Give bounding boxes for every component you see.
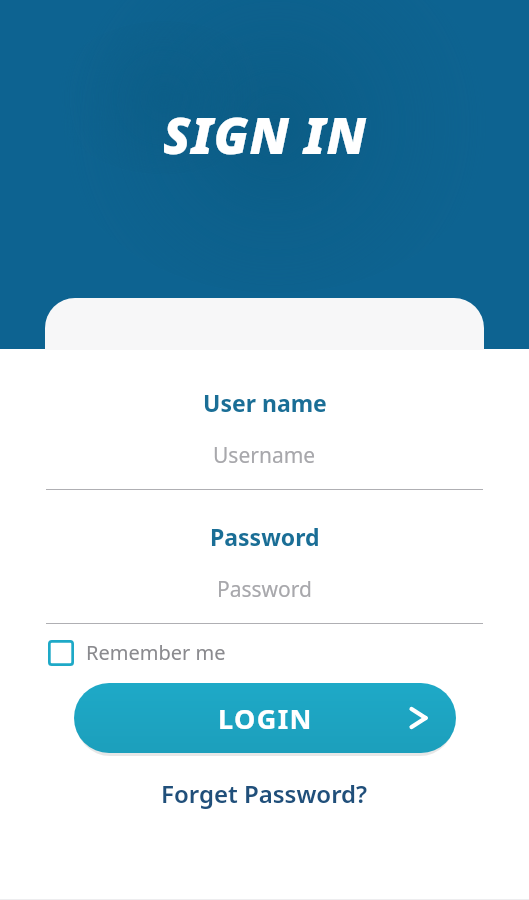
- staticText: Username: [213, 441, 316, 470]
- staticText: Remember me: [86, 639, 226, 666]
- staticText: LOGIN: [218, 700, 313, 737]
- button[interactable]: Remember me: [44, 635, 230, 670]
- button[interactable]: Forget Password?: [151, 771, 378, 816]
- staticText: Forget Password?: [161, 777, 368, 810]
- button[interactable]: Username: [46, 440, 483, 470]
- button[interactable]: LOGIN: [74, 683, 456, 753]
- staticText: Password: [217, 575, 312, 604]
- staticText: Password: [210, 521, 320, 552]
- button[interactable]: Password: [46, 574, 483, 604]
- staticText: SIGN IN: [163, 101, 367, 169]
- staticText: User name: [203, 387, 327, 418]
